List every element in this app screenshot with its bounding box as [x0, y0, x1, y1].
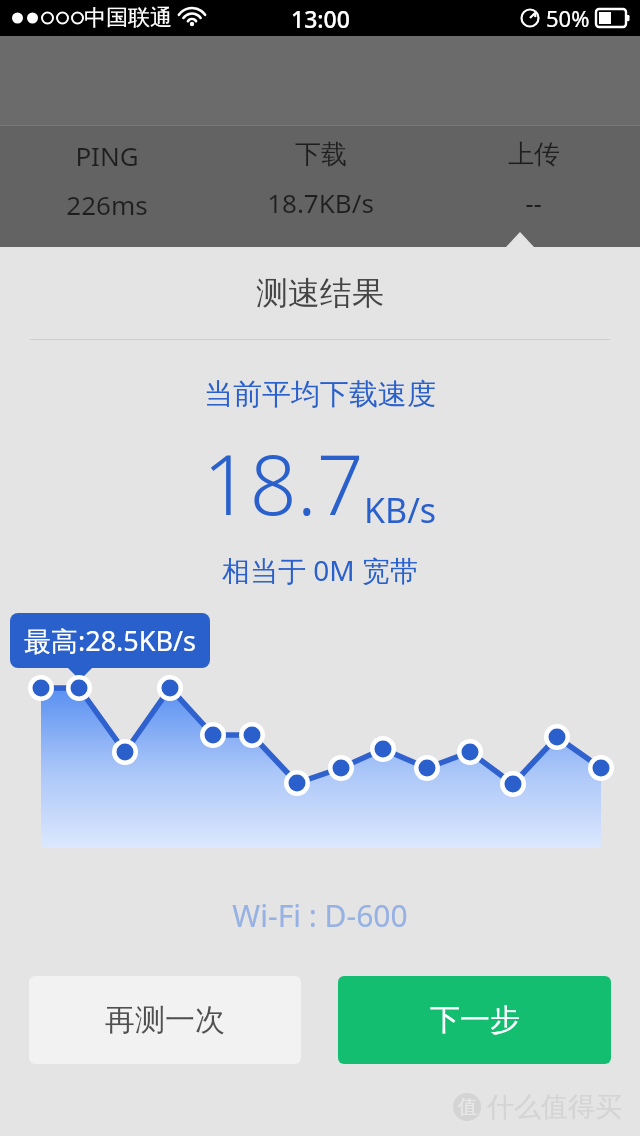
staticText: 下载 — [295, 138, 347, 171]
button[interactable]: 再测一次 — [29, 976, 301, 1064]
staticText: 当前平均下载速度 — [0, 376, 640, 413]
button[interactable]: 最高:28.5KB/s — [10, 613, 210, 668]
staticText: 什么值得买 — [487, 1090, 622, 1124]
staticText: 值 — [458, 1095, 477, 1119]
staticText: Wi-Fi : D-600 — [0, 895, 640, 936]
staticText: 18.7 — [203, 427, 364, 539]
staticText: KB/s — [364, 487, 437, 533]
staticText: PING — [75, 138, 139, 173]
staticText: 13:00 — [291, 3, 350, 34]
staticText: 下一步 — [430, 1001, 520, 1039]
staticText: 测速结果 — [0, 273, 640, 313]
button[interactable]: 下一步 — [338, 976, 611, 1064]
staticText: 中国联通 — [84, 4, 172, 32]
staticText: 上传 — [508, 138, 560, 171]
staticText: 相当于 0M 宽带 — [0, 551, 640, 589]
staticText: 226ms — [66, 187, 148, 222]
staticText: 18.7KB/s — [267, 185, 374, 220]
staticText: 再测一次 — [105, 1001, 225, 1039]
staticText: -- — [525, 185, 542, 220]
staticText: 最高:28.5KB/s — [24, 622, 197, 659]
staticText: 50% — [546, 3, 590, 33]
